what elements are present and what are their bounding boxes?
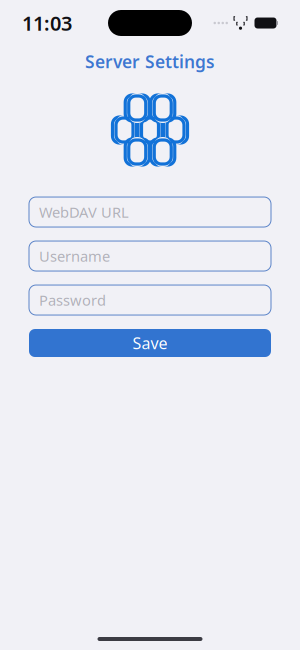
staticText: WebDAV URL	[39, 202, 129, 222]
staticText: Password	[39, 290, 106, 310]
button[interactable]: WebDAV URL	[29, 197, 271, 227]
button[interactable]: Username	[29, 241, 271, 271]
staticText: Server Settings	[85, 50, 215, 73]
button[interactable]: Password	[29, 285, 271, 315]
staticText: Username	[39, 246, 110, 266]
staticText: 11:03	[22, 10, 72, 36]
button[interactable]: Save	[29, 329, 271, 357]
staticText: Save	[132, 332, 167, 354]
